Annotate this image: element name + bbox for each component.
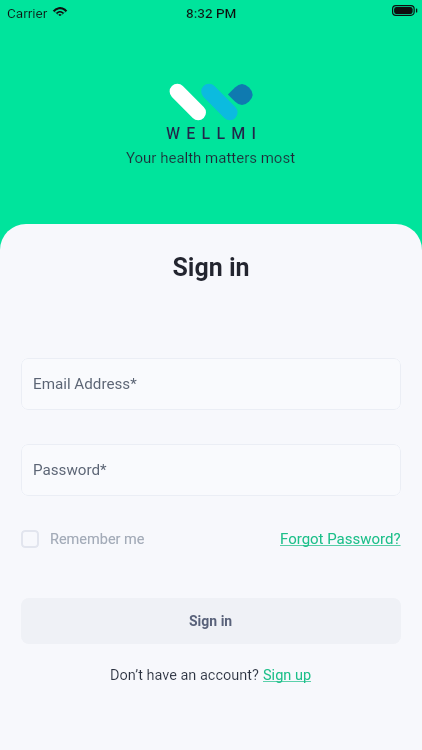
- staticText: Remember me: [50, 531, 145, 548]
- staticText: Sign up: [263, 667, 312, 684]
- other: Wi-Fi: [52, 4, 68, 16]
- staticText: Sign in: [189, 613, 233, 629]
- staticText: Sign in: [0, 253, 422, 282]
- staticText: 8:32 PM: [186, 5, 237, 21]
- button[interactable]: Forgot Password?: [280, 530, 401, 548]
- staticText: Email Address*: [33, 375, 137, 393]
- button[interactable]: Remember me: [21, 530, 145, 548]
- button[interactable]: Password*: [21, 444, 401, 496]
- button[interactable]: Email Address*: [21, 358, 401, 410]
- button[interactable]: Sign up: [263, 667, 312, 684]
- staticText: WELLMI: [166, 124, 263, 143]
- staticText: Don’t have an account?: [110, 667, 263, 684]
- staticText: Password*: [33, 461, 107, 479]
- staticText: Your health matters most: [126, 149, 296, 167]
- staticText: Carrier: [7, 5, 48, 21]
- button[interactable]: Sign in: [21, 598, 401, 644]
- other: Battery: [392, 5, 418, 16]
- staticText: Forgot Password?: [280, 530, 401, 548]
